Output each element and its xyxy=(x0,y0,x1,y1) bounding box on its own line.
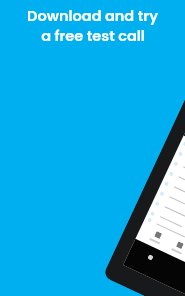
staticText: a free test call xyxy=(41,26,145,46)
staticText: Download and try xyxy=(27,6,158,26)
